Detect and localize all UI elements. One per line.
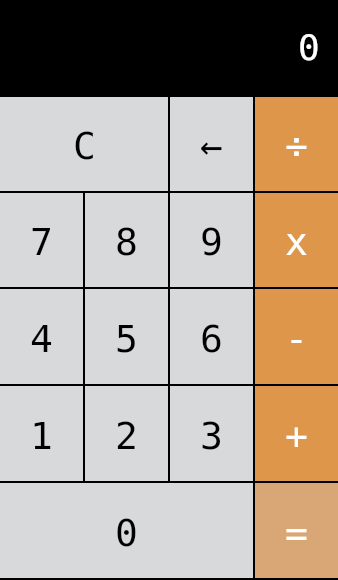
button[interactable]: 5 <box>85 289 168 384</box>
staticText: 2 <box>115 414 138 458</box>
button[interactable]: = <box>255 483 338 578</box>
staticText: 5 <box>115 317 138 361</box>
staticText: 3 <box>200 414 223 458</box>
staticText: ÷ <box>285 124 308 168</box>
staticText: 0 <box>115 511 138 555</box>
button[interactable]: 4 <box>0 289 83 384</box>
button[interactable]: 3 <box>170 386 253 481</box>
staticText: 4 <box>30 317 53 361</box>
staticText: 6 <box>200 317 223 361</box>
staticText: C <box>73 124 96 168</box>
staticText: 7 <box>30 220 53 264</box>
staticText: x <box>285 220 308 264</box>
button[interactable]: 1 <box>0 386 83 481</box>
button[interactable]: 2 <box>85 386 168 481</box>
button[interactable]: ÷ <box>255 97 338 191</box>
button[interactable]: 7 <box>0 193 83 287</box>
button[interactable]: x <box>255 193 338 287</box>
staticText: ← <box>200 124 223 168</box>
staticText: - <box>285 317 308 361</box>
staticText: 0 <box>298 27 320 69</box>
button[interactable]: C <box>0 97 168 191</box>
button[interactable]: + <box>255 386 338 481</box>
staticText: 8 <box>115 220 138 264</box>
button[interactable]: 6 <box>170 289 253 384</box>
staticText: 9 <box>200 220 223 264</box>
staticText: + <box>285 414 308 458</box>
button[interactable]: 8 <box>85 193 168 287</box>
staticText: 1 <box>30 414 53 458</box>
button[interactable]: 9 <box>170 193 253 287</box>
button[interactable]: ← <box>170 97 253 191</box>
button[interactable]: 0 <box>0 483 253 578</box>
button[interactable]: - <box>255 289 338 384</box>
staticText: = <box>285 511 308 555</box>
